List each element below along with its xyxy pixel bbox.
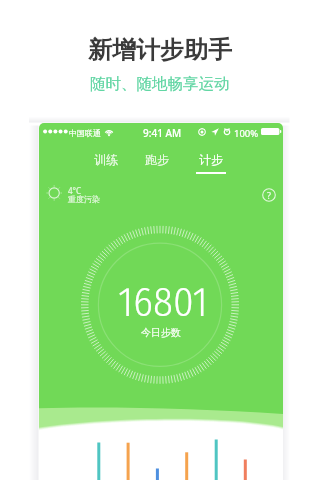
staticText: 计步 [199,152,223,167]
staticText: 中国联通 [69,128,101,138]
button[interactable]: 计步 [191,152,231,177]
button[interactable]: Help [262,188,276,202]
staticText: 重度污染 [68,194,100,204]
staticText: 16801 [118,278,208,327]
staticText: ? [267,189,271,201]
staticText: 随时、随地畅享运动 [90,74,230,94]
button[interactable]: 训练 [86,152,126,177]
staticText: 今日步数 [141,326,181,339]
staticText: 4°C [68,185,82,196]
button[interactable]: 跑步 [137,152,177,177]
staticText: 9:41 AM [143,126,182,140]
staticText: 新增计步助手 [88,35,232,65]
staticText: 跑步 [145,152,169,167]
staticText: 训练 [94,152,118,167]
staticText: 100% [234,127,259,140]
